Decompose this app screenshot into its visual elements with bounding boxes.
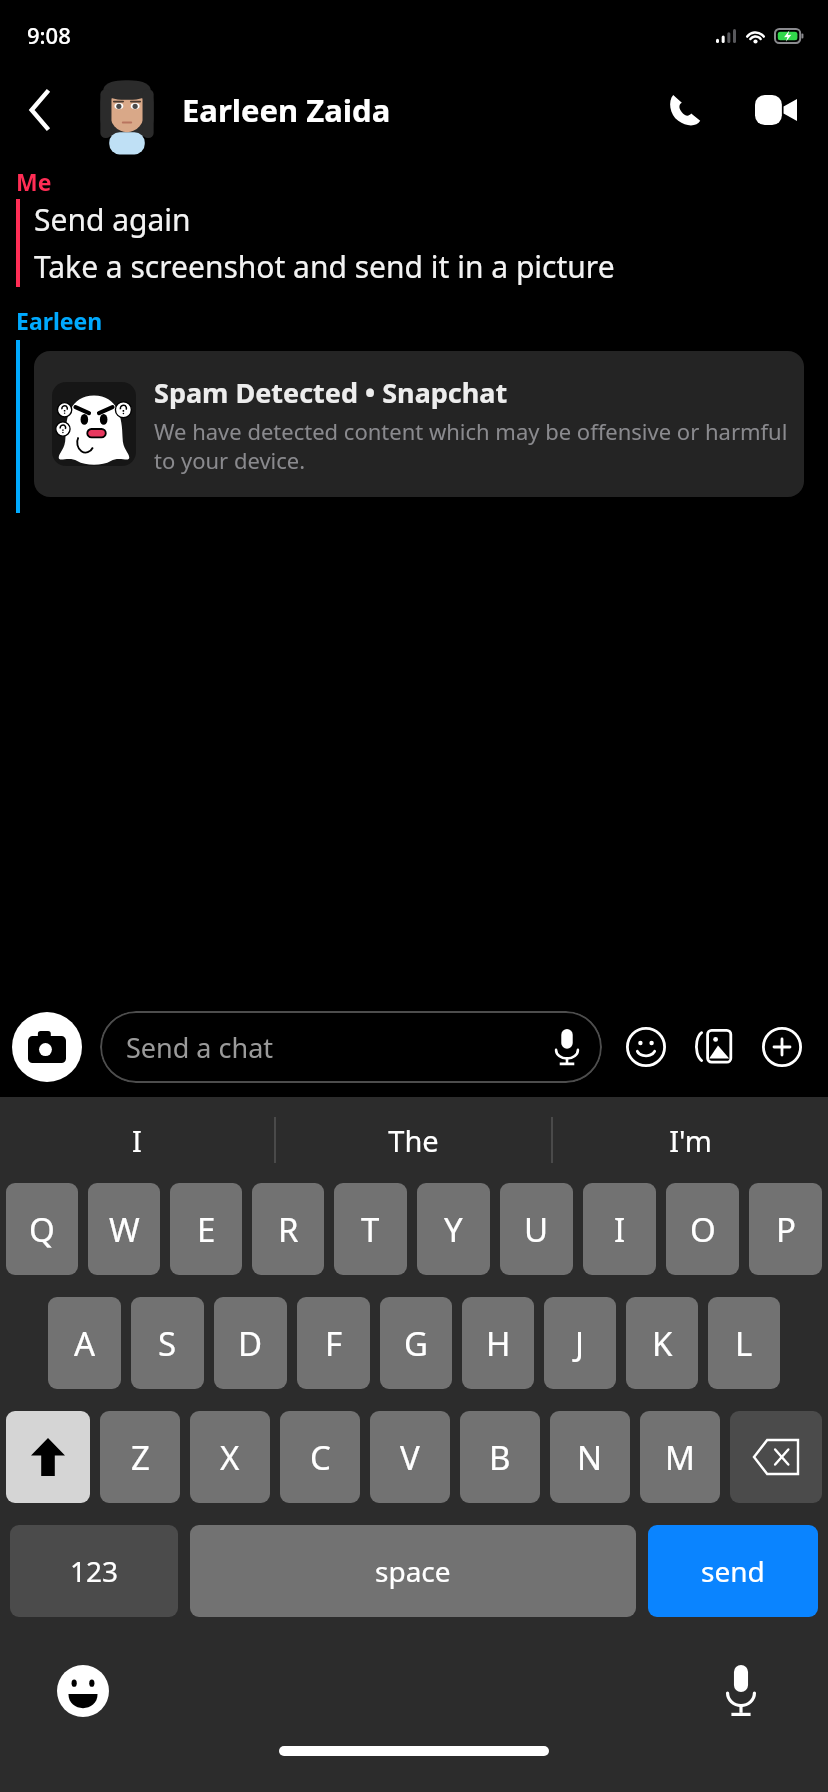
- button[interactable]: Q: [6, 1183, 78, 1275]
- staticText: Send a chat: [126, 1029, 554, 1066]
- button[interactable]: B: [460, 1411, 540, 1503]
- staticText: E: [197, 1207, 216, 1252]
- button[interactable]: Emoji keyboard: [52, 1660, 114, 1722]
- staticText: I'm: [669, 1121, 712, 1160]
- button[interactable]: S: [131, 1297, 204, 1389]
- button[interactable]: N: [550, 1411, 630, 1503]
- staticText: space: [375, 1552, 451, 1590]
- button[interactable]: The: [276, 1097, 551, 1183]
- staticText: G: [404, 1321, 429, 1366]
- staticText: V: [400, 1435, 420, 1480]
- staticText: Earleen: [16, 305, 103, 336]
- staticText: S: [158, 1321, 177, 1366]
- staticText: K: [652, 1321, 673, 1366]
- button[interactable]: I: [583, 1183, 656, 1275]
- staticText: The: [388, 1121, 439, 1160]
- button[interactable]: Spam Detected • Snapchat: [0, 340, 828, 513]
- staticText: Y: [444, 1207, 463, 1252]
- staticText: Spam Detected • Snapchat: [154, 374, 508, 411]
- button[interactable]: Video call: [744, 78, 808, 142]
- button[interactable]: send: [648, 1525, 818, 1617]
- staticText: Me: [16, 166, 52, 197]
- button[interactable]: I: [0, 1097, 274, 1183]
- button[interactable]: Profile: [90, 73, 164, 147]
- button[interactable]: Back: [12, 82, 68, 138]
- button[interactable]: Shift: [6, 1411, 90, 1503]
- staticText: F: [325, 1321, 343, 1366]
- staticText: C: [310, 1435, 331, 1480]
- staticText: Q: [29, 1207, 55, 1252]
- button[interactable]: D: [214, 1297, 287, 1389]
- button[interactable]: R: [252, 1183, 324, 1275]
- staticText: I: [132, 1121, 142, 1160]
- staticText: M: [665, 1435, 695, 1480]
- button[interactable]: Backspace: [730, 1411, 822, 1503]
- button[interactable]: Send again: [0, 199, 828, 287]
- button[interactable]: P: [749, 1183, 822, 1275]
- button[interactable]: Stickers: [618, 1019, 674, 1075]
- staticText: A: [74, 1321, 96, 1366]
- staticText: O: [690, 1207, 716, 1252]
- staticText: send: [701, 1552, 765, 1590]
- staticText: T: [361, 1207, 380, 1252]
- button[interactable]: Camera: [12, 1012, 82, 1082]
- button[interactable]: H: [462, 1297, 534, 1389]
- staticText: D: [238, 1321, 263, 1366]
- staticText: Earleen Zaida: [182, 89, 391, 131]
- button[interactable]: X: [190, 1411, 270, 1503]
- staticText: U: [524, 1207, 549, 1252]
- staticText: X: [220, 1435, 240, 1480]
- staticText: 123: [70, 1552, 119, 1590]
- button[interactable]: space: [190, 1525, 636, 1617]
- button[interactable]: A: [48, 1297, 121, 1389]
- button[interactable]: T: [334, 1183, 407, 1275]
- button[interactable]: More options: [754, 1019, 810, 1075]
- staticText: H: [486, 1321, 511, 1366]
- staticText: N: [577, 1435, 603, 1480]
- staticText: Take a screenshot and send it in a pictu…: [34, 246, 615, 287]
- other: Voice note: [554, 1029, 580, 1065]
- button[interactable]: L: [708, 1297, 780, 1389]
- button[interactable]: K: [626, 1297, 698, 1389]
- staticText: W: [109, 1207, 140, 1252]
- button[interactable]: M: [640, 1411, 720, 1503]
- button[interactable]: 123: [10, 1525, 178, 1617]
- button[interactable]: Y: [417, 1183, 490, 1275]
- staticText: 9:08: [27, 20, 71, 50]
- button[interactable]: I'm: [553, 1097, 828, 1183]
- button[interactable]: Z: [100, 1411, 180, 1503]
- staticText: P: [776, 1207, 796, 1252]
- button[interactable]: W: [88, 1183, 160, 1275]
- button[interactable]: V: [370, 1411, 450, 1503]
- button[interactable]: G: [380, 1297, 452, 1389]
- staticText: We have detected content which may be of…: [154, 416, 788, 475]
- button[interactable]: O: [666, 1183, 739, 1275]
- button[interactable]: Gallery: [686, 1019, 742, 1075]
- staticText: Send again: [34, 199, 191, 240]
- staticText: L: [735, 1321, 753, 1366]
- button[interactable]: Send a chat: [100, 1011, 602, 1083]
- staticText: I: [614, 1207, 626, 1252]
- button[interactable]: F: [297, 1297, 370, 1389]
- staticText: Z: [131, 1435, 150, 1480]
- staticText: J: [575, 1321, 585, 1366]
- button[interactable]: Dictation: [710, 1660, 772, 1722]
- staticText: B: [489, 1435, 511, 1480]
- button[interactable]: J: [544, 1297, 616, 1389]
- button[interactable]: C: [280, 1411, 360, 1503]
- button[interactable]: U: [500, 1183, 573, 1275]
- button[interactable]: Audio call: [652, 78, 716, 142]
- button[interactable]: E: [170, 1183, 242, 1275]
- staticText: R: [278, 1207, 299, 1252]
